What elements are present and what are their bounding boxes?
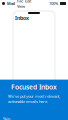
staticText: Focused Inbox (11, 83, 57, 91)
staticText: File Edit View (17, 0, 32, 9)
staticText: We've put your most relevant, actionable… (8, 93, 60, 104)
staticText: Inbox (15, 14, 29, 22)
button[interactable]: Skip (3, 116, 10, 120)
staticText: Mail (7, 1, 15, 6)
staticText: Skip (3, 116, 10, 120)
staticText: 100% (49, 1, 58, 6)
